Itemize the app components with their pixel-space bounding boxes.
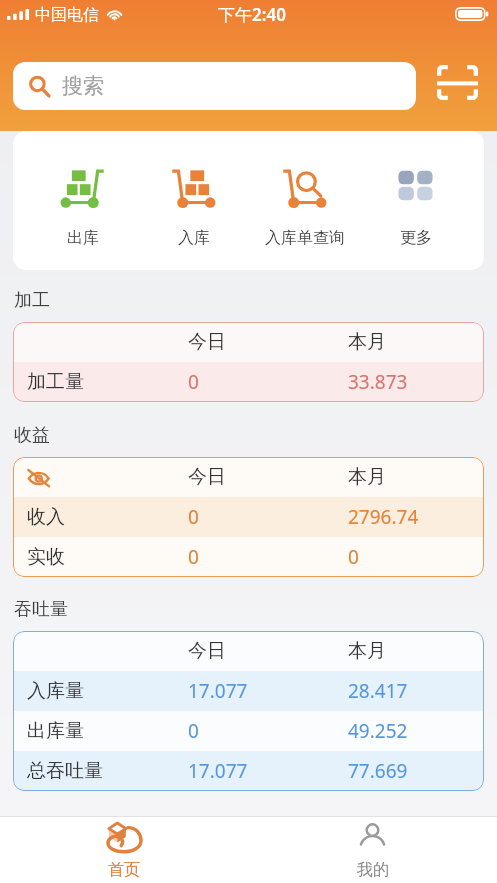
staticText: 28.417: [348, 678, 408, 704]
staticText: 出库量: [27, 719, 84, 743]
staticText: 首页: [108, 860, 140, 880]
staticText: 本月: [348, 465, 386, 489]
button[interactable]: 出库: [27, 131, 138, 270]
staticText: 33.873: [348, 369, 408, 395]
staticText: 0: [188, 369, 199, 395]
staticText: 0: [188, 504, 199, 530]
staticText: 收益: [14, 424, 50, 447]
button[interactable]: 入库: [138, 131, 249, 270]
staticText: 今日: [188, 330, 226, 354]
button[interactable]: 更多: [360, 131, 471, 270]
staticText: 入库单查询: [265, 228, 345, 248]
button[interactable]: 我的: [248, 817, 497, 883]
staticText: 0: [188, 544, 199, 570]
staticText: 吞吐量: [14, 598, 68, 621]
staticText: 77.669: [348, 758, 408, 784]
staticText: 收入: [27, 505, 65, 529]
staticText: 17.077: [188, 758, 248, 784]
staticText: 今日: [188, 639, 226, 663]
staticText: 17.077: [188, 678, 248, 704]
staticText: 入库量: [27, 679, 84, 703]
staticText: 出库: [67, 228, 99, 248]
staticText: 更多: [400, 228, 432, 248]
staticText: 2796.74: [348, 504, 419, 530]
staticText: 加工: [14, 289, 50, 312]
button[interactable]: 首页: [0, 817, 248, 883]
staticText: 49.252: [348, 718, 408, 744]
staticText: 今日: [188, 465, 226, 489]
staticText: 本月: [348, 330, 386, 354]
staticText: 加工量: [27, 370, 84, 394]
button[interactable]: 扫一扫: [433, 58, 481, 106]
staticText: 我的: [357, 860, 389, 880]
staticText: 下午2:40: [218, 3, 286, 26]
staticText: 本月: [348, 639, 386, 663]
staticText: 实收: [27, 545, 65, 569]
button[interactable]: 入库单查询: [249, 131, 360, 270]
button[interactable]: 搜索: [13, 62, 416, 110]
staticText: 0: [188, 718, 199, 744]
staticText: 总吞吐量: [27, 759, 103, 783]
staticText: 搜索: [62, 73, 104, 99]
staticText: 中国电信: [35, 5, 99, 25]
staticText: 入库: [178, 228, 210, 248]
staticText: 0: [348, 544, 359, 570]
